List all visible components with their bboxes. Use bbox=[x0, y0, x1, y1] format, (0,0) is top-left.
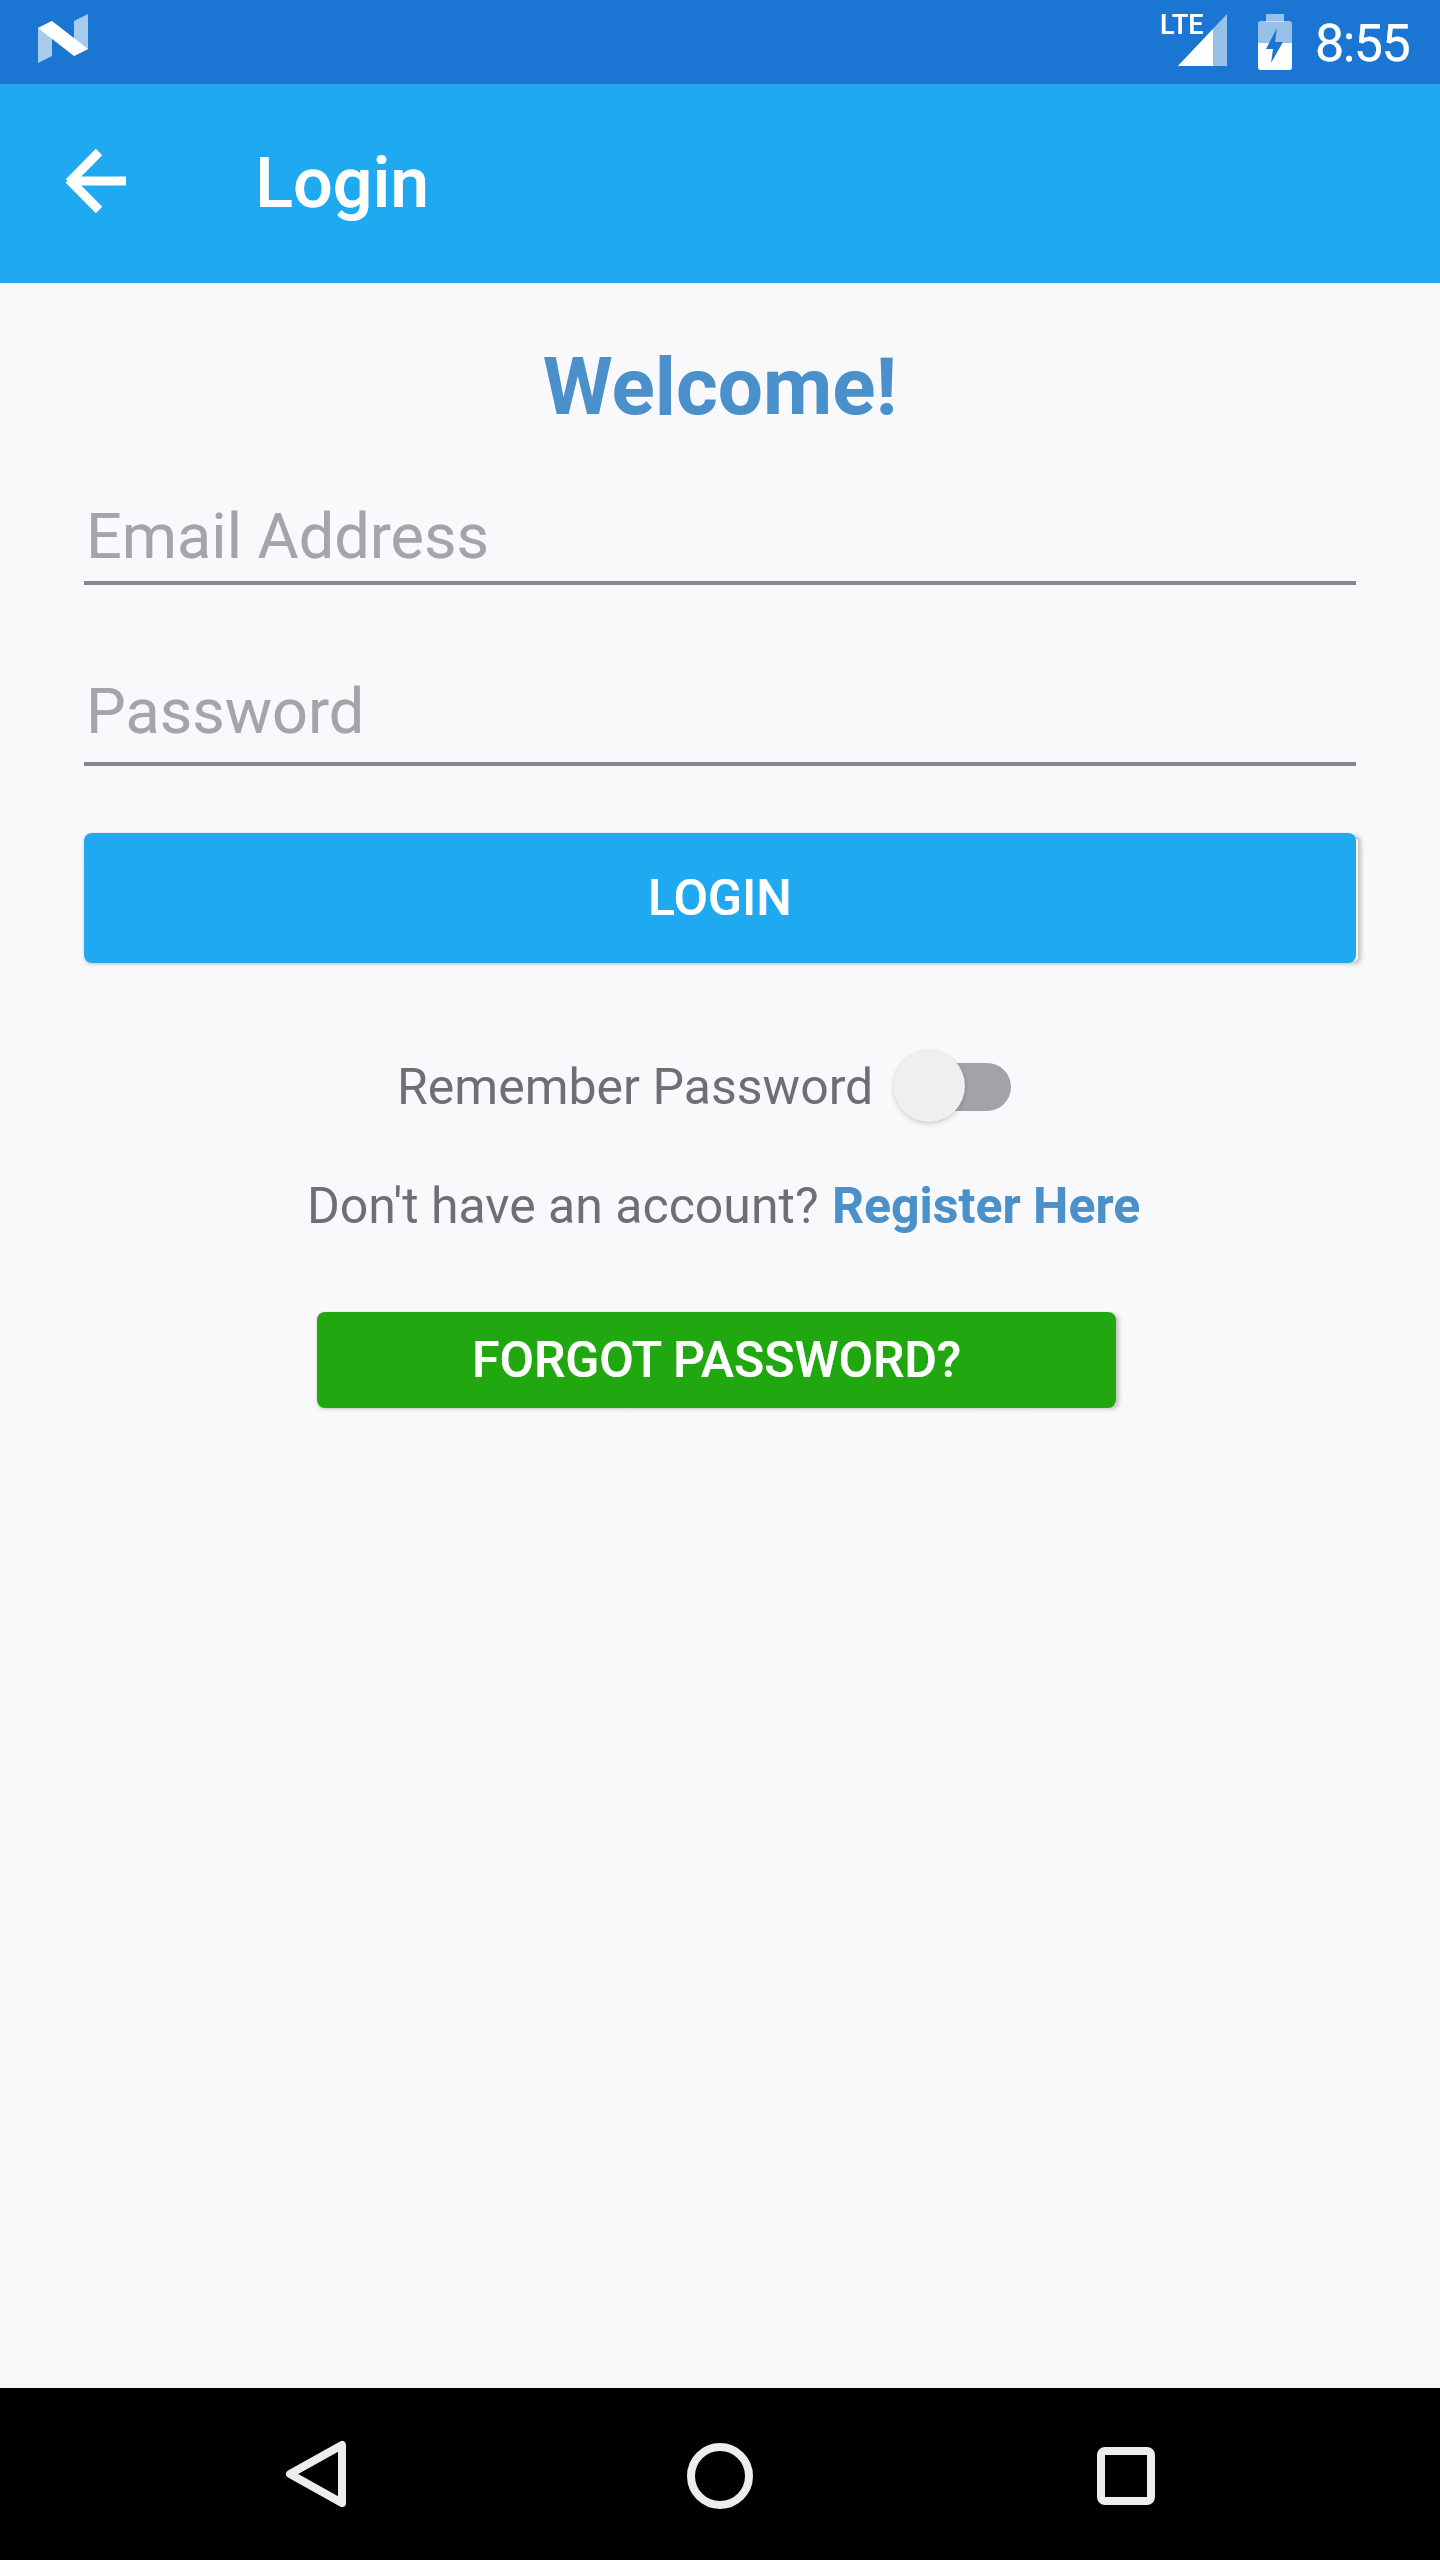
button[interactable]: Register Here bbox=[0, 0, 309, 59]
staticText: Password bbox=[86, 675, 365, 749]
staticText: Welcome! bbox=[0, 340, 1440, 434]
button[interactable] bbox=[48, 130, 148, 230]
staticText: LTE bbox=[1160, 9, 1204, 41]
staticText: FORGOT PASSWORD? bbox=[472, 1331, 962, 1390]
button[interactable] bbox=[256, 2415, 376, 2535]
staticText: Email Address bbox=[86, 500, 489, 574]
button[interactable] bbox=[890, 1044, 1016, 1130]
button[interactable] bbox=[660, 2416, 780, 2536]
staticText: Remember Password bbox=[397, 1058, 874, 1117]
staticText: 8:55 bbox=[1315, 13, 1410, 74]
staticText: Login bbox=[255, 142, 430, 224]
staticText: LOGIN bbox=[648, 869, 792, 928]
button[interactable]: LOGIN bbox=[84, 833, 1356, 963]
button[interactable] bbox=[1066, 2416, 1186, 2536]
button[interactable]: FORGOT PASSWORD? bbox=[317, 1312, 1116, 1408]
staticText: Don't have an account? bbox=[307, 1177, 819, 1236]
